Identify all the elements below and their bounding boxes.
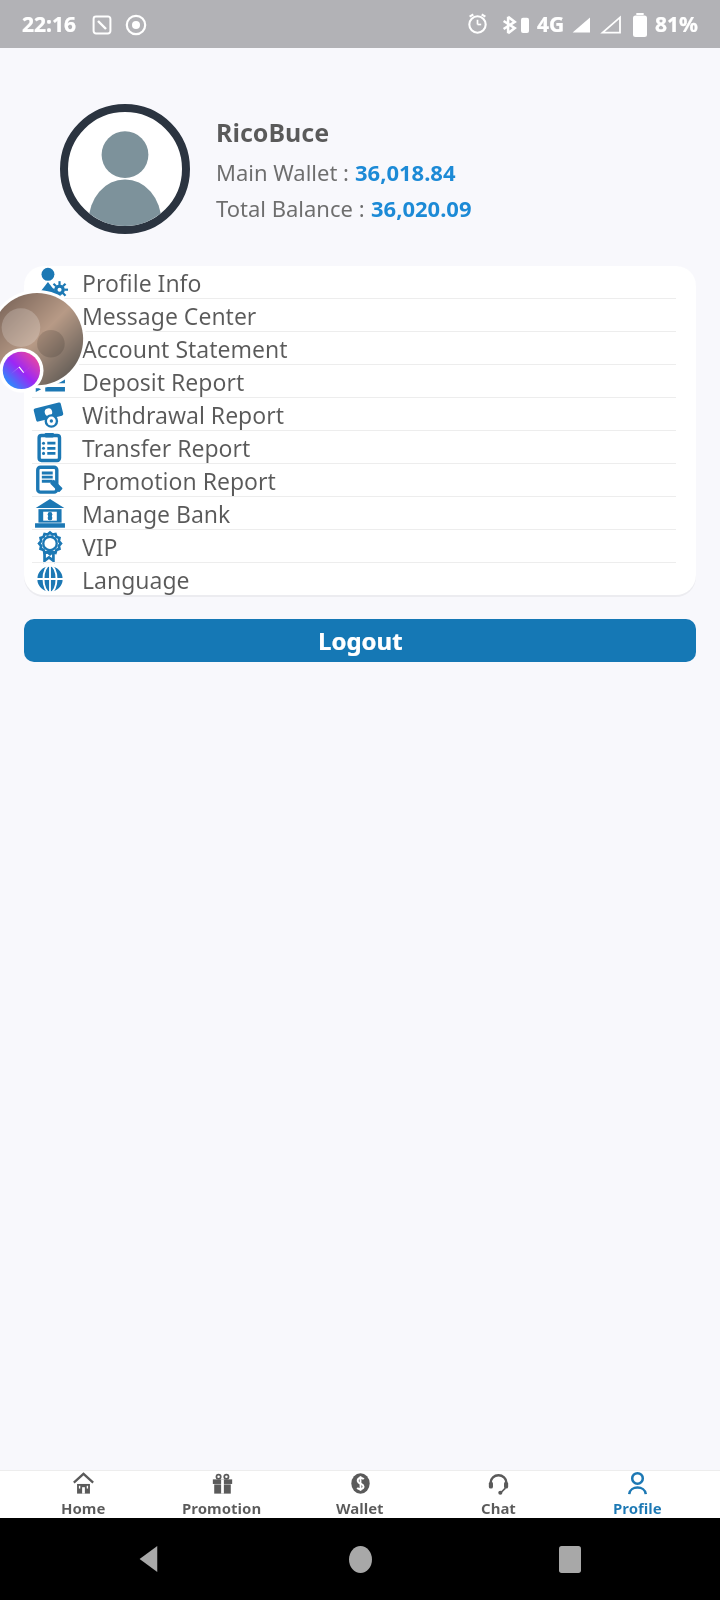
button[interactable]: Recent apps bbox=[510, 1529, 630, 1589]
staticText: Chat bbox=[481, 1498, 516, 1518]
staticText: Profile Info bbox=[82, 267, 202, 298]
button[interactable]: Profile bbox=[582, 1472, 692, 1518]
staticText: Wallet bbox=[336, 1498, 384, 1518]
staticText: Transfer Report bbox=[82, 432, 251, 463]
staticText: 22:16 bbox=[22, 10, 76, 39]
button[interactable]: Promotion bbox=[167, 1472, 277, 1518]
staticText: 36,018.84 bbox=[355, 157, 456, 187]
staticText: 4G bbox=[537, 10, 565, 39]
staticText: Withdrawal Report bbox=[82, 399, 284, 430]
button[interactable]: Messenger chat head bbox=[0, 296, 90, 394]
staticText: VIP bbox=[82, 531, 118, 562]
staticText: Message Center bbox=[82, 300, 257, 331]
button[interactable]: Transfer Report bbox=[24, 431, 696, 463]
button[interactable]: VIP bbox=[24, 530, 696, 562]
staticText: Promotion bbox=[182, 1498, 262, 1518]
staticText: Total Balance : bbox=[216, 193, 371, 223]
button[interactable]: Wallet bbox=[305, 1472, 415, 1518]
button[interactable]: Home bbox=[300, 1529, 420, 1589]
button[interactable]: Deposit Report bbox=[24, 365, 696, 397]
staticText: Logout bbox=[318, 624, 403, 657]
staticText: Promotion Report bbox=[82, 465, 276, 496]
button[interactable]: Manage Bank bbox=[24, 497, 696, 529]
staticText: Manage Bank bbox=[82, 498, 231, 529]
button[interactable]: Home bbox=[28, 1472, 138, 1518]
staticText: Account Statement bbox=[82, 333, 288, 364]
staticText: Profile bbox=[613, 1498, 662, 1518]
staticText: 36,020.09 bbox=[371, 193, 472, 223]
button[interactable]: Profile Info bbox=[24, 266, 696, 298]
button[interactable]: Chat bbox=[443, 1472, 553, 1518]
button[interactable]: Language bbox=[24, 563, 696, 595]
button[interactable]: Message Center bbox=[24, 299, 696, 331]
staticText: 81% bbox=[655, 10, 698, 39]
staticText: RicoBuce bbox=[216, 115, 330, 149]
button[interactable]: Account Statement bbox=[24, 332, 696, 364]
button[interactable]: Logout bbox=[24, 619, 696, 662]
button[interactable]: Back bbox=[90, 1529, 210, 1589]
staticText: Language bbox=[82, 564, 190, 595]
button[interactable]: Promotion Report bbox=[24, 464, 696, 496]
staticText: Deposit Report bbox=[82, 366, 245, 397]
staticText: Home bbox=[61, 1498, 106, 1518]
button[interactable]: Withdrawal Report bbox=[24, 398, 696, 430]
staticText: Main Wallet : bbox=[216, 157, 355, 187]
